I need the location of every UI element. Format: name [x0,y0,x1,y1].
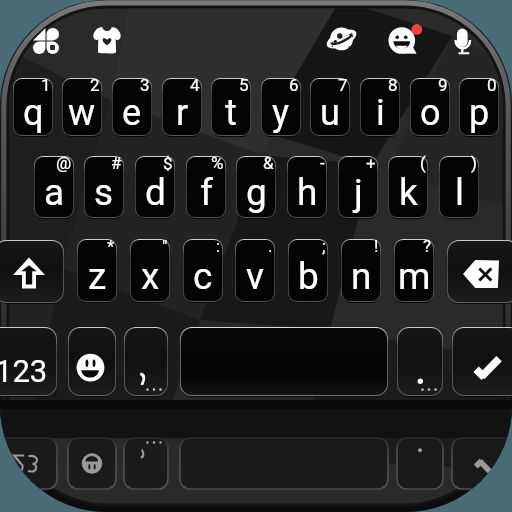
staticText: ) [471,153,477,173]
staticText: ( [420,153,426,173]
button[interactable]: g [236,156,276,219]
staticText: f [200,171,213,214]
staticText: w [68,92,96,134]
staticText: 9 [438,75,448,95]
staticText: 8 [388,75,398,95]
staticText: o [420,92,441,134]
staticText: 4 [190,75,200,95]
button[interactable]: e [112,78,152,137]
button[interactable]: j [338,156,378,219]
staticText: s [94,171,114,214]
button[interactable]: p [459,78,499,137]
staticText: " [162,236,168,256]
button[interactable]: Period [397,327,443,397]
staticText: r [176,92,189,134]
staticText: # [111,153,122,173]
button[interactable]: n [341,239,381,303]
button[interactable]: Voice input [454,28,472,55]
button[interactable]: r [162,78,202,137]
button[interactable]: Emoji keyboard [68,327,116,397]
button[interactable]: i [360,78,400,137]
staticText: ? [423,236,432,256]
button[interactable]: b [288,239,328,303]
staticText: a [44,171,65,214]
staticText: c [193,255,213,298]
staticText: m [398,255,431,298]
button[interactable]: h [287,156,327,219]
button[interactable]: Stickers [93,27,121,54]
button[interactable]: f [186,156,226,219]
button[interactable]: z [77,239,117,303]
staticText: j [354,171,363,214]
staticText: y [272,92,290,134]
button[interactable]: Emoji [388,26,420,55]
button[interactable]: v [235,239,275,303]
button[interactable]: a [34,156,74,219]
button[interactable]: q [13,78,53,137]
staticText: h [297,171,318,214]
button[interactable]: u [310,78,350,137]
staticText: $ [163,153,173,173]
button[interactable]: Space theme [327,28,359,54]
staticText: i [376,92,385,134]
staticText: : [216,236,221,256]
button[interactable]: s [84,156,124,219]
button[interactable]: y [261,78,301,137]
button[interactable]: Enter [452,327,512,397]
staticText: k [399,171,418,214]
staticText: l [455,171,464,214]
staticText: q [23,92,44,134]
staticText: . [268,236,273,256]
button[interactable]: Themes [33,28,59,54]
staticText: ! [374,236,379,256]
button[interactable]: Space [180,327,388,397]
staticText: d [145,171,166,214]
staticText: 6 [289,75,299,95]
button[interactable]: c [183,239,223,303]
button[interactable]: o [410,78,450,137]
staticText: + [366,153,376,173]
button[interactable]: d [135,156,175,219]
staticText: ; [322,236,326,256]
staticText: & [263,153,274,173]
staticText: e [122,92,142,134]
staticText: 123 [0,353,48,389]
staticText: * [107,236,115,256]
staticText: u [320,92,340,134]
staticText: 1 [41,75,51,95]
staticText: - [320,153,325,173]
staticText: 7 [338,75,348,95]
staticText: v [246,255,264,298]
button[interactable]: t [211,78,251,137]
button[interactable]: Comma [124,327,168,397]
staticText: b [298,255,319,298]
staticText: 0 [487,75,497,95]
staticText: 5 [239,75,249,95]
staticText: 3 [140,75,150,95]
staticText: % [211,153,224,173]
staticText: p [469,92,490,134]
button[interactable]: x [130,239,170,303]
button[interactable]: m [394,239,434,303]
staticText: @ [56,153,72,173]
staticText: t [225,92,237,134]
staticText: n [351,255,372,298]
button[interactable]: k [388,156,428,219]
button[interactable]: l [439,156,479,219]
staticText: g [246,171,267,214]
button[interactable]: Backspace [447,240,512,304]
staticText: x [141,255,160,298]
button[interactable]: w [62,78,102,137]
staticText: 2 [90,75,100,95]
button[interactable]: 123 [0,327,57,397]
button[interactable]: Shift [0,240,64,304]
staticText: z [88,255,107,298]
